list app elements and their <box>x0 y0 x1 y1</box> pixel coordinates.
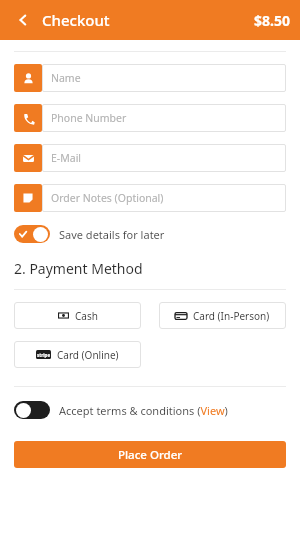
staticText: Checkout <box>42 10 110 30</box>
staticText: Card (In-Person) <box>193 309 270 323</box>
staticText: Card (Online) <box>57 348 119 362</box>
button[interactable]: Name <box>14 64 286 92</box>
button[interactable]: Cash <box>14 302 141 329</box>
staticText: 2. Payment Method <box>14 259 143 278</box>
button[interactable]: Place Order <box>14 441 286 468</box>
button[interactable]: Save details for later <box>14 225 286 243</box>
staticText: stripe <box>37 352 51 358</box>
staticText: Order Notes (Optional) <box>51 191 164 205</box>
staticText: Phone Number <box>51 111 127 125</box>
button[interactable]: Card (In-Person) <box>159 302 286 329</box>
button[interactable]: Back <box>10 7 36 33</box>
staticText: Accept terms & conditions (View) <box>59 403 228 418</box>
staticText: Name <box>51 71 81 85</box>
button[interactable]: Phone Number <box>14 104 286 132</box>
staticText: Place Order <box>118 447 183 463</box>
button[interactable]: E-Mail <box>14 144 286 172</box>
staticText: E-Mail <box>51 151 82 165</box>
staticText: $8.50 <box>254 11 290 30</box>
button[interactable]: Accept terms & conditions (View) <box>14 401 286 419</box>
button[interactable]: Order Notes (Optional) <box>14 184 286 212</box>
button[interactable]: stripe <box>14 341 141 368</box>
staticText: Cash <box>75 309 98 323</box>
staticText: Save details for later <box>59 227 165 242</box>
